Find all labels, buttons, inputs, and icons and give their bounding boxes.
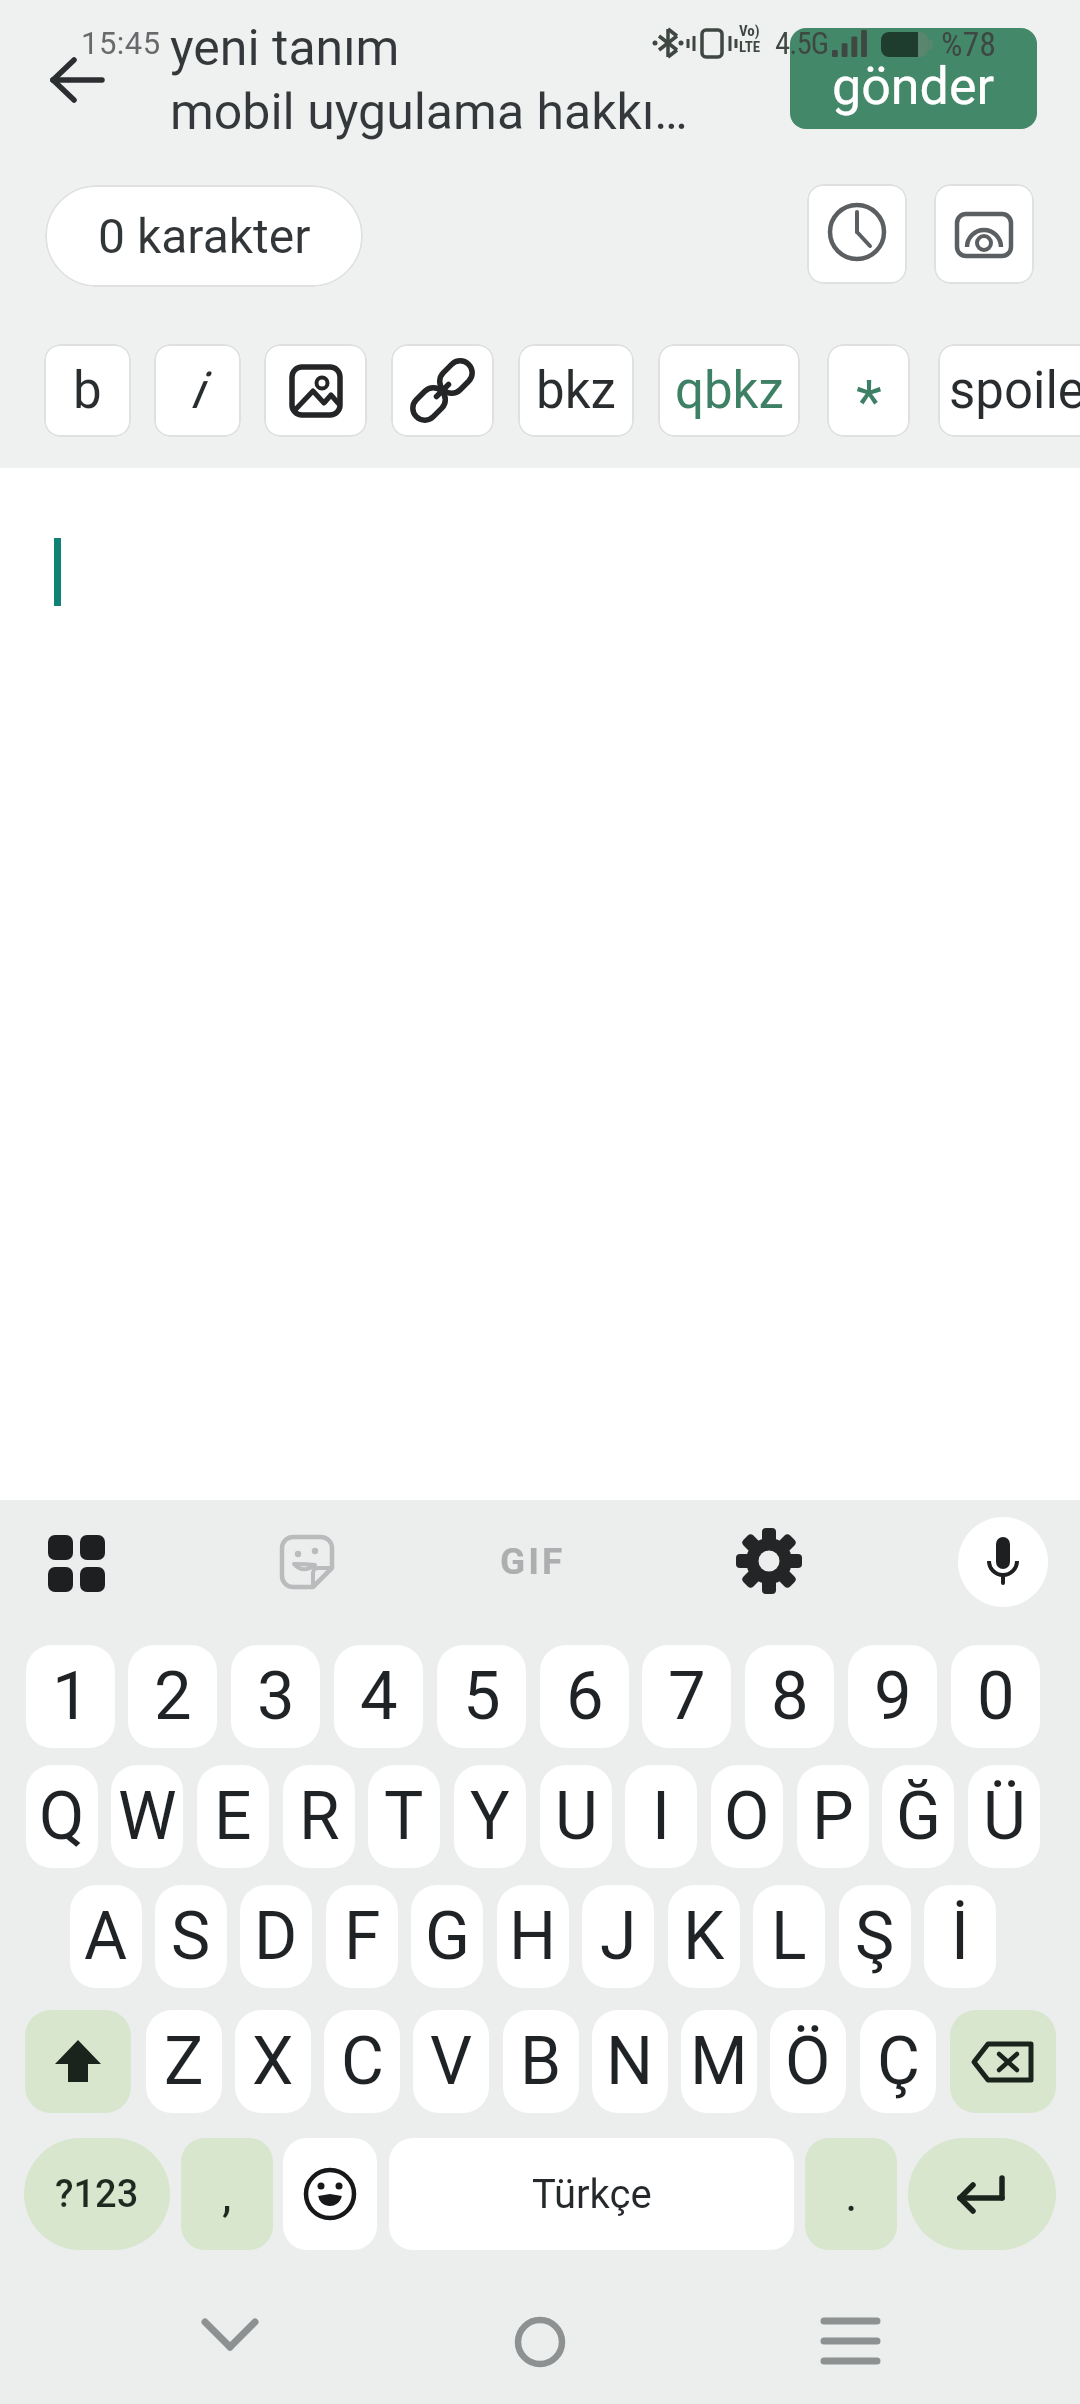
- button[interactable]: 5: [437, 1645, 526, 1748]
- button[interactable]: Ö: [770, 2010, 846, 2113]
- button[interactable]: [264, 344, 367, 437]
- button[interactable]: [180, 2300, 280, 2380]
- button[interactable]: Y: [454, 1765, 526, 1868]
- button[interactable]: [807, 184, 907, 284]
- button[interactable]: Ü: [968, 1765, 1040, 1868]
- button[interactable]: U: [540, 1765, 612, 1868]
- button[interactable]: [908, 2138, 1056, 2250]
- staticText: gönder: [832, 56, 995, 117]
- button[interactable]: N: [592, 2010, 668, 2113]
- staticText: *: [856, 366, 882, 436]
- staticText: bkz: [536, 361, 616, 421]
- button[interactable]: 1: [26, 1645, 115, 1748]
- staticText: 3: [257, 1657, 295, 1736]
- button[interactable]: 2: [128, 1645, 217, 1748]
- button[interactable]: İ: [924, 1885, 996, 1988]
- button[interactable]: L: [753, 1885, 825, 1988]
- staticText: ?123: [55, 2172, 139, 2217]
- button[interactable]: W: [111, 1765, 183, 1868]
- button[interactable]: B: [503, 2010, 579, 2113]
- button[interactable]: [391, 344, 494, 437]
- staticText: R: [299, 1778, 340, 1855]
- button[interactable]: T: [368, 1765, 440, 1868]
- staticText: 1: [52, 1657, 90, 1736]
- staticText: T: [384, 1778, 424, 1855]
- staticText: yeni tanım: [170, 19, 400, 78]
- button[interactable]: G: [411, 1885, 483, 1988]
- staticText: U: [555, 1778, 598, 1855]
- button[interactable]: O: [711, 1765, 783, 1868]
- button[interactable]: S: [155, 1885, 227, 1988]
- staticText: L: [771, 1898, 807, 1975]
- staticText: 4.5G: [775, 25, 829, 61]
- staticText: Q: [39, 1778, 85, 1855]
- button[interactable]: [490, 2302, 590, 2382]
- button[interactable]: Türkçe: [389, 2138, 794, 2250]
- staticText: H: [509, 1898, 557, 1975]
- button[interactable]: F: [326, 1885, 398, 1988]
- button[interactable]: Z: [146, 2010, 222, 2113]
- button[interactable]: 8: [745, 1645, 834, 1748]
- staticText: M: [690, 2023, 748, 2100]
- button[interactable]: 0: [951, 1645, 1040, 1748]
- button[interactable]: V: [413, 2010, 489, 2113]
- button[interactable]: ?123: [24, 2138, 170, 2250]
- button[interactable]: C: [324, 2010, 400, 2113]
- staticText: GIF: [500, 1540, 566, 1583]
- button[interactable]: [40, 1527, 112, 1597]
- staticText: O: [724, 1778, 770, 1855]
- button[interactable]: qbkz: [658, 344, 800, 437]
- button[interactable]: [0, 468, 1080, 1500]
- button[interactable]: .: [805, 2138, 897, 2250]
- button[interactable]: 3: [231, 1645, 320, 1748]
- button[interactable]: ,: [181, 2138, 273, 2250]
- button[interactable]: [800, 2300, 900, 2380]
- staticText: Ü: [983, 1778, 1026, 1855]
- button[interactable]: [934, 184, 1034, 284]
- button[interactable]: [25, 2010, 131, 2113]
- staticText: spoiler: [949, 361, 1080, 421]
- button[interactable]: Ş: [839, 1885, 911, 1988]
- button[interactable]: 4: [334, 1645, 423, 1748]
- button[interactable]: 9: [848, 1645, 937, 1748]
- button[interactable]: *: [827, 344, 910, 437]
- button[interactable]: [30, 55, 125, 110]
- button[interactable]: [279, 1534, 335, 1590]
- button[interactable]: I: [625, 1765, 697, 1868]
- button[interactable]: Ç: [860, 2010, 936, 2113]
- button[interactable]: R: [283, 1765, 355, 1868]
- button[interactable]: K: [668, 1885, 740, 1988]
- staticText: 6: [566, 1657, 604, 1736]
- button[interactable]: M: [681, 2010, 757, 2113]
- button[interactable]: b: [44, 344, 131, 437]
- button[interactable]: [734, 1526, 804, 1596]
- button[interactable]: J: [582, 1885, 654, 1988]
- staticText: W: [118, 1778, 177, 1855]
- button[interactable]: D: [240, 1885, 312, 1988]
- button[interactable]: A: [70, 1885, 142, 1988]
- staticText: LTE: [739, 38, 761, 56]
- button[interactable]: [950, 2010, 1056, 2113]
- button[interactable]: H: [497, 1885, 569, 1988]
- button[interactable]: gönder: [790, 28, 1037, 129]
- button[interactable]: GIF: [500, 1540, 580, 1585]
- button[interactable]: spoiler: [938, 344, 1080, 437]
- button[interactable]: i: [154, 344, 241, 437]
- button[interactable]: Q: [26, 1765, 98, 1868]
- button[interactable]: P: [797, 1765, 869, 1868]
- staticText: Z: [164, 2023, 204, 2100]
- button[interactable]: E: [197, 1765, 269, 1868]
- button[interactable]: Ğ: [882, 1765, 954, 1868]
- button[interactable]: [958, 1517, 1048, 1607]
- button[interactable]: 7: [642, 1645, 731, 1748]
- staticText: V: [430, 2023, 473, 2100]
- button[interactable]: 0 karakter: [45, 185, 363, 287]
- staticText: ,: [222, 2166, 232, 2222]
- button[interactable]: [283, 2138, 377, 2250]
- button[interactable]: 6: [540, 1645, 629, 1748]
- staticText: S: [171, 1898, 211, 1975]
- staticText: X: [252, 2023, 294, 2100]
- button[interactable]: X: [235, 2010, 311, 2113]
- button[interactable]: bkz: [518, 344, 634, 437]
- staticText: K: [683, 1898, 725, 1975]
